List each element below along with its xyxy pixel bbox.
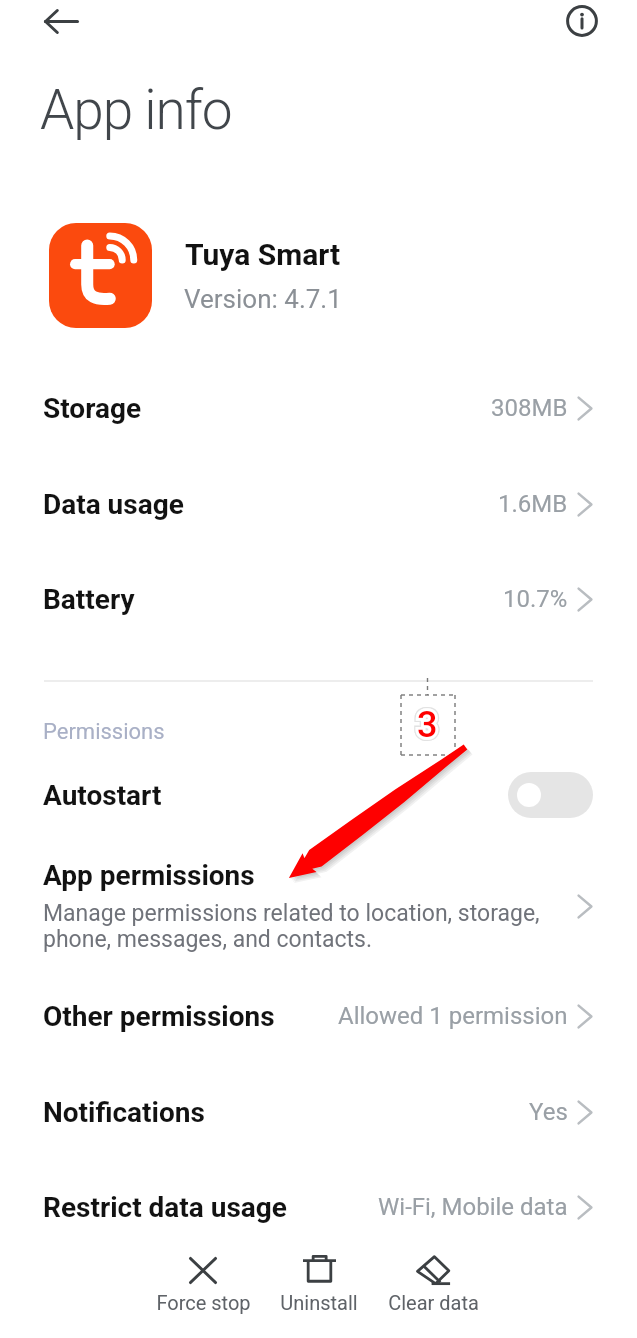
staticText: 3 (417, 704, 438, 746)
staticText: Clear data (388, 1291, 479, 1314)
button[interactable]: Clear data (368, 1248, 498, 1314)
staticText: Allowed 1 permission (338, 1002, 568, 1030)
staticText: Version: 4.7.1 (184, 284, 342, 314)
staticText: 3 (417, 704, 438, 746)
button[interactable]: Data usage (0, 486, 637, 522)
button[interactable]: Other permissions (0, 998, 637, 1034)
staticText: Storage (43, 392, 142, 425)
button[interactable]: Battery (0, 581, 637, 617)
staticText: 308MB (491, 394, 568, 422)
staticText: Other permissions (43, 1000, 275, 1033)
button[interactable]: App permissions (0, 859, 637, 953)
staticText: Yes (529, 1098, 568, 1126)
button[interactable]: Autostart (0, 761, 637, 829)
button[interactable]: Restrict data usage (0, 1189, 637, 1225)
staticText: Uninstall (280, 1291, 358, 1314)
staticText: Data usage (43, 488, 184, 521)
button[interactable]: Notifications (0, 1094, 637, 1130)
button[interactable]: Uninstall (254, 1248, 384, 1314)
button[interactable]: Storage (0, 390, 637, 426)
staticText: Notifications (43, 1096, 205, 1129)
staticText: Tuya Smart (185, 237, 341, 272)
staticText: Wi-Fi, Mobile data (378, 1193, 568, 1221)
staticText: Force stop (156, 1291, 251, 1314)
button[interactable]: Force stop (138, 1248, 268, 1314)
staticText: 10.7% (503, 585, 568, 613)
staticText: 3 (417, 704, 438, 746)
button[interactable]: Back (37, 0, 86, 46)
button[interactable]: Info (557, 0, 606, 45)
staticText: App permissions (43, 859, 255, 892)
staticText: Manage permissions related to location, … (43, 900, 540, 953)
staticText: 1.6MB (498, 490, 568, 518)
staticText: Permissions (43, 719, 165, 745)
staticText: Restrict data usage (43, 1191, 287, 1224)
staticText: Battery (43, 583, 135, 616)
staticText: Autostart (43, 779, 162, 812)
staticText: App info (40, 78, 232, 142)
